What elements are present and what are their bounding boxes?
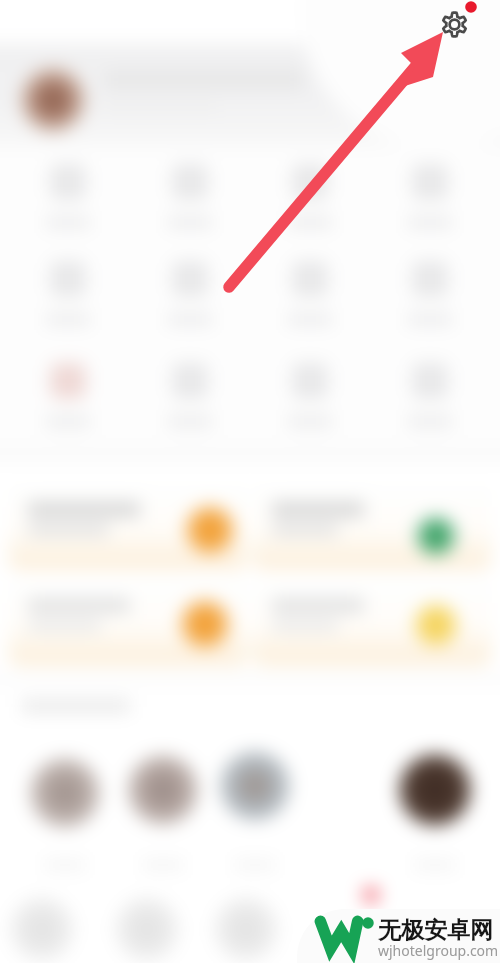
- button[interactable]: [24, 261, 112, 325]
- button[interactable]: [30, 758, 100, 828]
- button[interactable]: [399, 754, 471, 826]
- button[interactable]: [386, 261, 474, 325]
- button[interactable]: [266, 363, 354, 427]
- button[interactable]: [10, 897, 74, 961]
- button[interactable]: [252, 582, 492, 666]
- button[interactable]: [146, 363, 234, 427]
- button[interactable]: [8, 582, 248, 666]
- button[interactable]: [146, 261, 234, 325]
- button[interactable]: Settings: [441, 11, 468, 38]
- button[interactable]: [214, 897, 278, 961]
- button[interactable]: [266, 164, 354, 228]
- button[interactable]: [24, 363, 112, 427]
- button[interactable]: [266, 261, 354, 325]
- button[interactable]: [115, 897, 179, 961]
- staticText: wjhotelgroup.com: [378, 941, 499, 960]
- button[interactable]: [220, 751, 290, 821]
- button[interactable]: [128, 755, 198, 825]
- button[interactable]: [252, 486, 492, 570]
- button[interactable]: [8, 486, 248, 570]
- button[interactable]: [386, 164, 474, 228]
- staticText: 无极安卓网: [378, 916, 493, 945]
- button[interactable]: [146, 164, 234, 228]
- button[interactable]: [386, 363, 474, 427]
- button[interactable]: [24, 164, 112, 228]
